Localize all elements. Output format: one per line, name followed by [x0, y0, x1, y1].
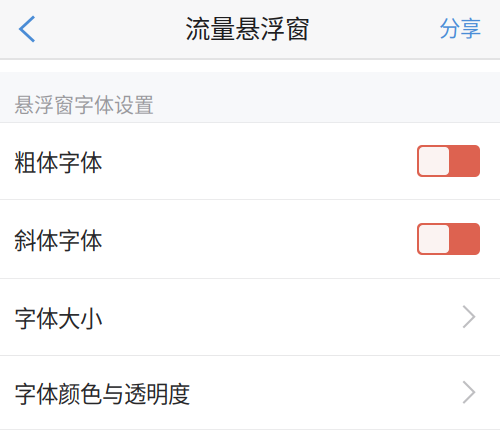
staticText: 悬浮窗字体设置: [14, 89, 154, 118]
staticText: 斜体字体: [14, 223, 102, 255]
button[interactable]: 斜体字体: [0, 200, 500, 278]
button[interactable]: 粗体字体: [0, 123, 500, 199]
staticText: 粗体字体: [14, 145, 102, 177]
button[interactable]: 字体颜色与透明度: [0, 356, 500, 429]
button[interactable]: 分享: [439, 0, 500, 58]
button[interactable]: 字体大小: [0, 279, 500, 355]
button[interactable]: Back: [0, 0, 52, 58]
staticText: 字体颜色与透明度: [14, 376, 190, 409]
staticText: 流量悬浮窗: [185, 9, 310, 45]
staticText: 字体大小: [14, 301, 102, 333]
staticText: 分享: [439, 12, 481, 42]
